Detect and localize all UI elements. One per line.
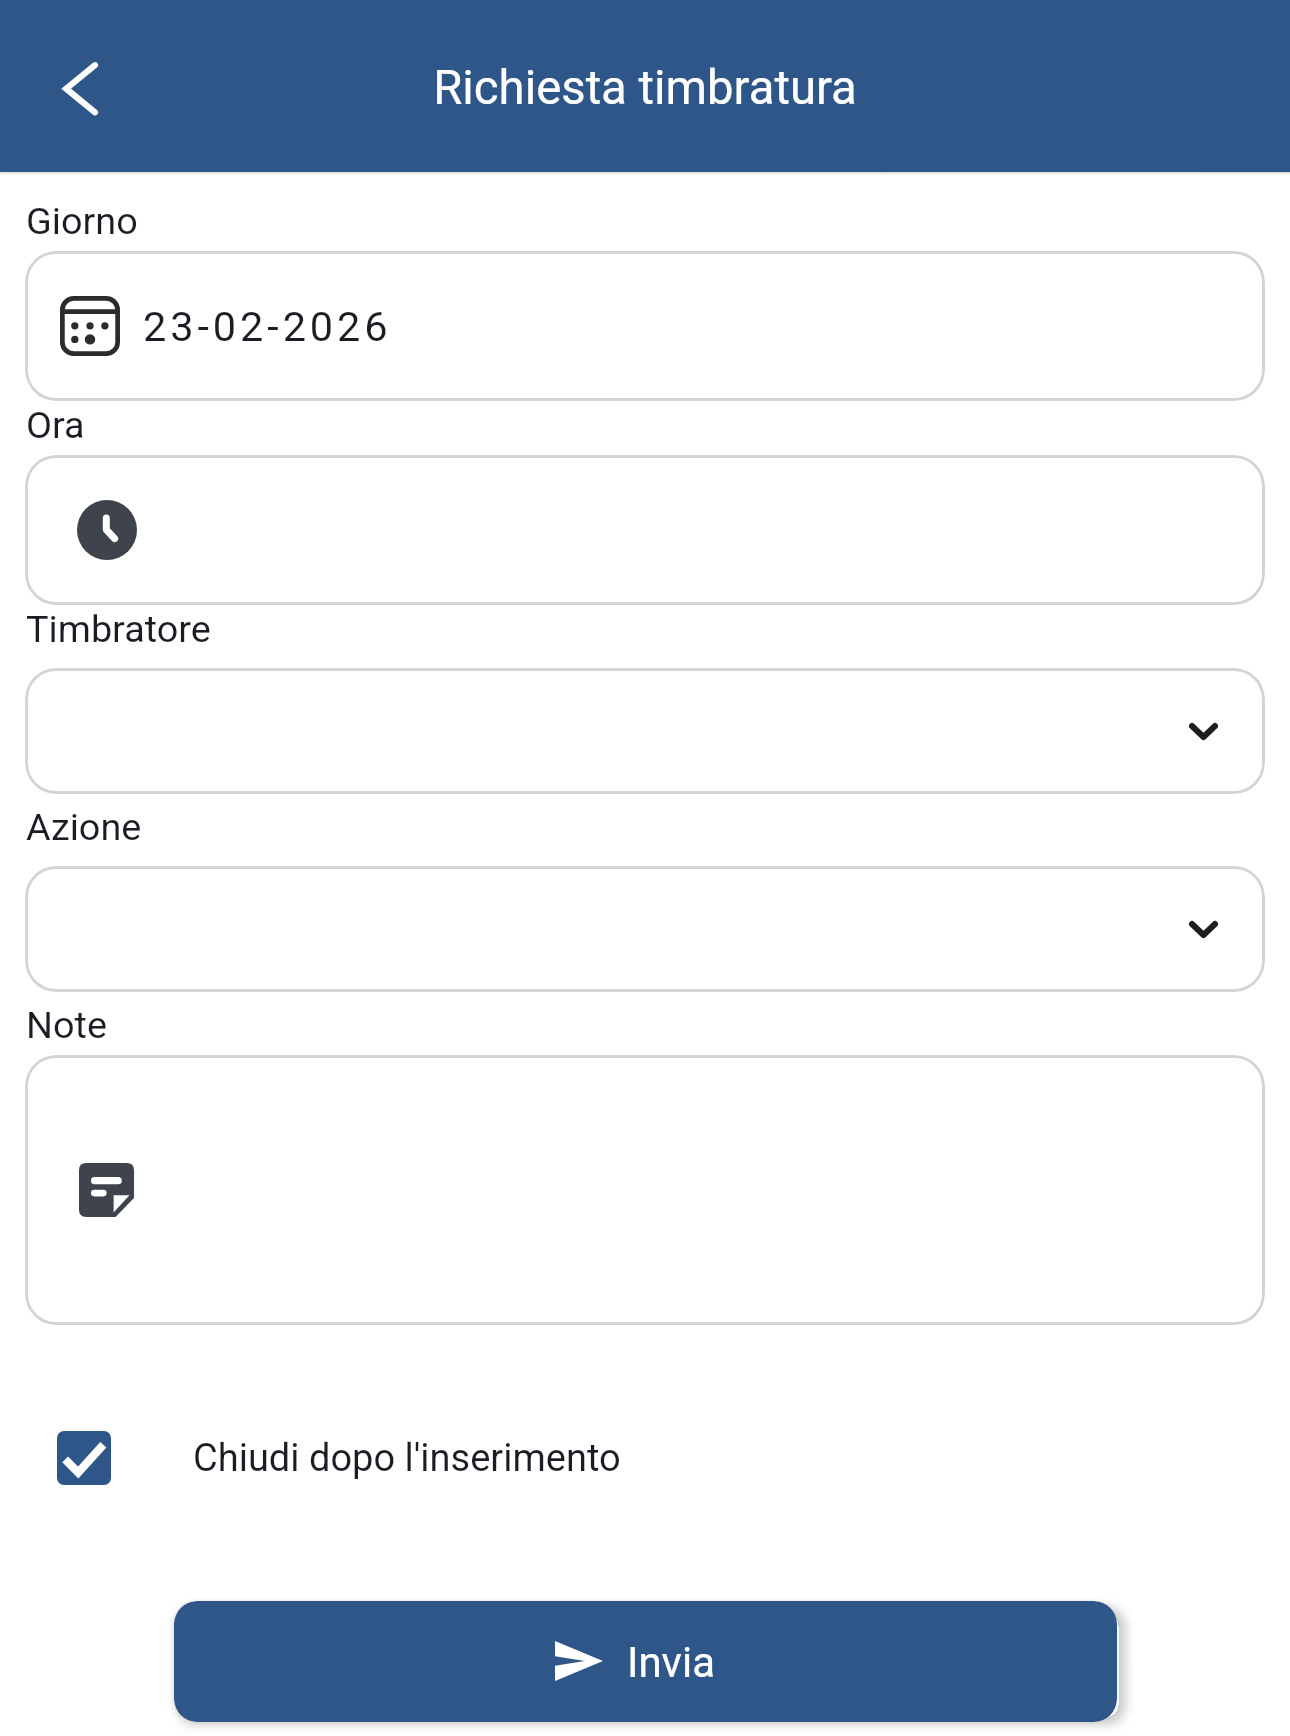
button[interactable]: Chiudi dopo l'inserimento — [57, 1430, 677, 1486]
button[interactable]: Note — [25, 1055, 1265, 1325]
button[interactable]: Invia — [174, 1601, 1117, 1722]
staticText: Timbratore — [26, 607, 211, 651]
staticText: Invia — [627, 1638, 716, 1687]
button[interactable]: Seleziona ora — [25, 455, 1265, 605]
staticText: Note — [26, 1003, 107, 1047]
staticText: Giorno — [26, 199, 138, 243]
staticText: Azione — [26, 805, 142, 849]
staticText: Richiesta timbratura — [0, 60, 1290, 115]
staticText: 23-02-2026 — [143, 302, 392, 351]
button[interactable]: Seleziona azione — [25, 866, 1265, 992]
staticText: Ora — [26, 403, 85, 447]
button[interactable]: Seleziona timbratore — [25, 668, 1265, 794]
staticText: Chiudi dopo l'inserimento — [193, 1436, 621, 1481]
button[interactable]: Giorno: 23-02-2026 — [25, 251, 1265, 401]
button[interactable]: Back — [44, 47, 122, 125]
